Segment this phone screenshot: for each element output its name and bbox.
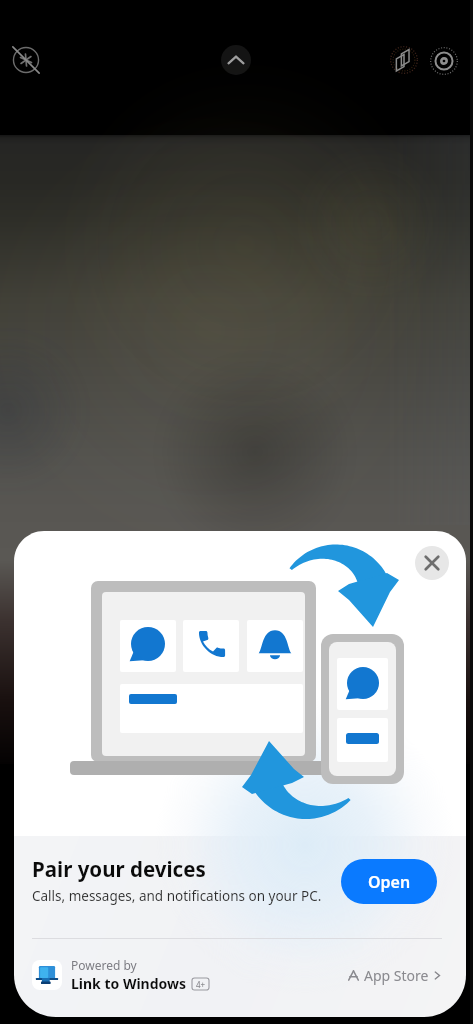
staticText: Link to Windows (71, 974, 187, 993)
button[interactable]: Live Photo off (386, 42, 422, 78)
button[interactable]: Open (341, 859, 437, 904)
button[interactable]: Flash off (4, 38, 48, 82)
button[interactable]: Close (415, 546, 449, 580)
button[interactable]: Camera filters (426, 43, 462, 79)
button[interactable]: App Store (347, 966, 442, 985)
staticText: Calls, messages, and notifications on yo… (32, 887, 322, 905)
staticText: App Store (364, 966, 429, 985)
staticText: Pair your devices (32, 855, 206, 883)
staticText: Powered by (71, 957, 137, 973)
staticText: 4+ (196, 979, 206, 990)
staticText: Open (368, 871, 411, 893)
button[interactable]: Expand camera controls (221, 45, 251, 75)
